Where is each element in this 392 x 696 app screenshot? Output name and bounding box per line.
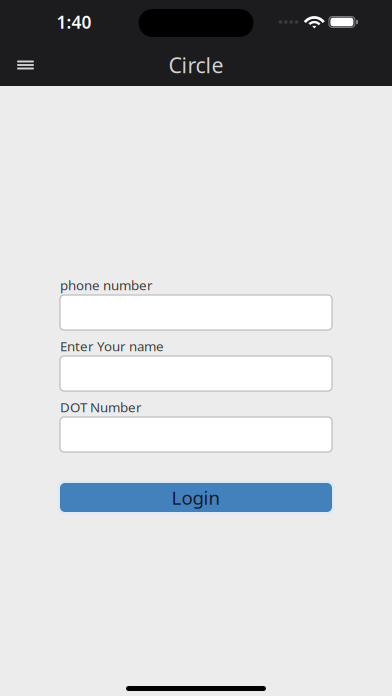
staticText: Enter Your name (60, 337, 164, 355)
staticText: phone number (60, 276, 153, 294)
textField[interactable]: DOT Number (60, 419, 332, 449)
textField[interactable]: phone number (60, 297, 332, 327)
textField[interactable]: Enter Your name (60, 358, 332, 388)
staticText: 1:40 (56, 10, 91, 33)
staticText: DOT Number (60, 398, 142, 416)
button[interactable]: Menu (4, 44, 47, 86)
staticText: Circle (168, 51, 223, 79)
staticText: Login (171, 485, 220, 510)
button[interactable]: Login (60, 483, 332, 512)
